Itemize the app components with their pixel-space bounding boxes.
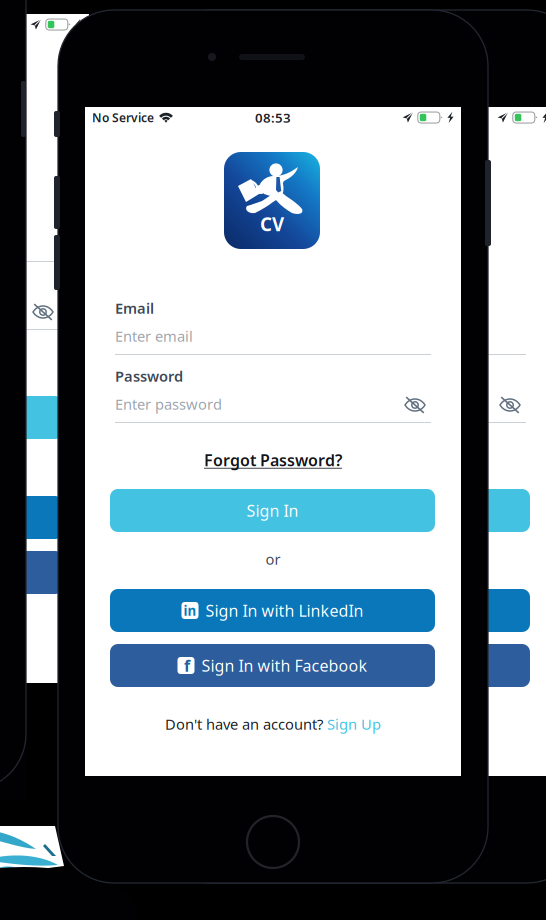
staticText: Sign In with LinkedIn bbox=[300, 600, 458, 621]
button[interactable]: in bbox=[110, 589, 435, 632]
button[interactable]: Sign Up bbox=[327, 714, 381, 734]
button[interactable]: in bbox=[0, 496, 63, 539]
button[interactable]: Sign In bbox=[205, 489, 530, 532]
button[interactable]: Show password bbox=[26, 297, 60, 327]
staticText: f bbox=[279, 655, 285, 676]
staticText: 08:53 bbox=[255, 109, 291, 126]
staticText: Sign In bbox=[246, 500, 298, 521]
staticText: in bbox=[183, 602, 196, 619]
staticText: Don't have an account? bbox=[260, 714, 422, 734]
staticText: Email bbox=[115, 298, 154, 318]
button[interactable]: Sign Up bbox=[422, 714, 476, 734]
staticText: CV bbox=[260, 212, 284, 236]
staticText: Don't have an account? bbox=[165, 714, 327, 734]
staticText: Enter email bbox=[115, 326, 193, 346]
staticText: Enter password bbox=[210, 394, 317, 414]
staticText: Sign In with LinkedIn bbox=[205, 600, 363, 621]
staticText: Sign Up bbox=[422, 714, 476, 734]
staticText: f bbox=[184, 655, 190, 676]
staticText: Forgot Password? bbox=[299, 449, 437, 471]
button[interactable]: f bbox=[0, 551, 63, 594]
button[interactable]: f bbox=[205, 644, 530, 687]
staticText: in bbox=[278, 602, 291, 619]
button[interactable]: f bbox=[110, 644, 435, 687]
button[interactable]: Forgot Password? bbox=[288, 449, 448, 471]
button[interactable]: Sign In bbox=[0, 396, 63, 439]
staticText: No Service bbox=[92, 109, 154, 125]
staticText: Password bbox=[115, 366, 183, 386]
staticText: or bbox=[265, 549, 280, 569]
button[interactable]: Show password bbox=[398, 390, 432, 420]
button[interactable]: Sign In bbox=[110, 489, 435, 532]
staticText: Forgot Password? bbox=[204, 449, 342, 471]
staticText: Sign In with Facebook bbox=[296, 655, 462, 676]
staticText: Sign Up bbox=[327, 714, 381, 734]
button[interactable]: Forgot Password? bbox=[193, 449, 353, 471]
button[interactable]: Show password bbox=[493, 390, 527, 420]
staticText: Enter password bbox=[115, 394, 222, 414]
button[interactable]: in bbox=[205, 589, 530, 632]
staticText: Sign In with Facebook bbox=[201, 655, 367, 676]
